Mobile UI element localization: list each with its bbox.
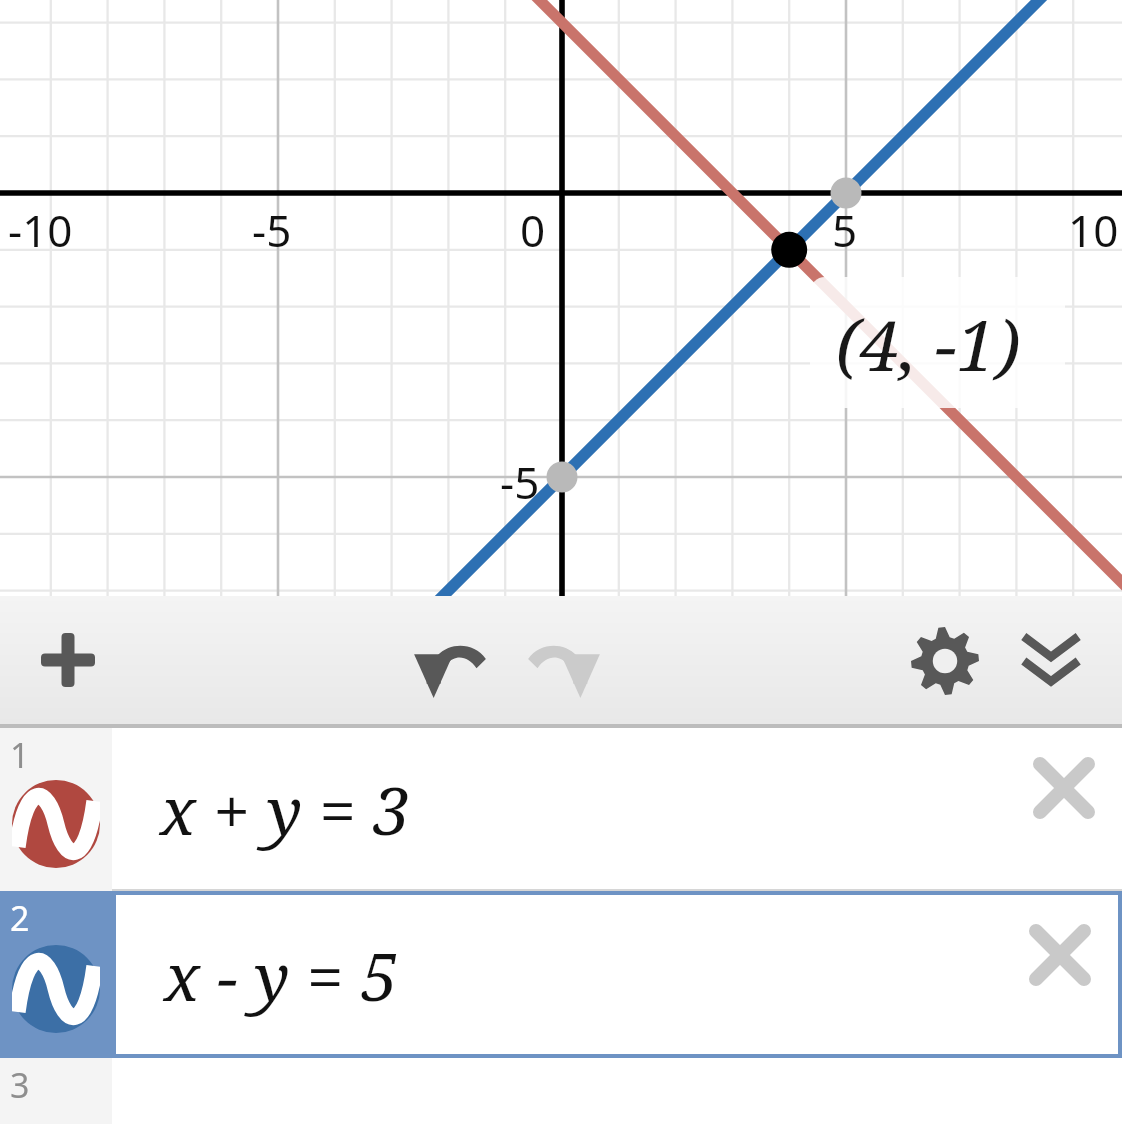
button[interactable]: 3 (0, 1058, 1122, 1124)
staticText: 10 (1068, 200, 1119, 260)
staticText: -5 (252, 200, 292, 260)
staticText: (4, −1) (836, 296, 1021, 391)
button[interactable]: 2 (0, 891, 1122, 1058)
button[interactable]: Collapse expression list (1002, 612, 1100, 710)
staticText: x + y = 3 (160, 764, 411, 854)
staticText: 0 (520, 200, 546, 260)
button[interactable]: Toggle plot 1 (12, 780, 100, 868)
button[interactable]: 1 (0, 728, 1122, 891)
button[interactable]: Redo (512, 610, 616, 714)
staticText: 1 (10, 732, 30, 778)
button[interactable]: Undo (398, 610, 502, 714)
button[interactable]: Delete expression 1 (1020, 744, 1108, 832)
staticText: x − y = 5 (164, 930, 398, 1020)
staticText: -5 (500, 452, 540, 512)
button[interactable]: Settings (896, 612, 994, 710)
staticText: 3 (10, 1062, 30, 1108)
button[interactable]: Toggle plot 2 (12, 945, 100, 1033)
staticText: 2 (10, 895, 30, 941)
staticText: 5 (832, 200, 858, 260)
button[interactable]: Delete expression 2 (1016, 911, 1104, 999)
button[interactable]: Add expression (20, 612, 116, 708)
staticText: -10 (8, 200, 73, 260)
